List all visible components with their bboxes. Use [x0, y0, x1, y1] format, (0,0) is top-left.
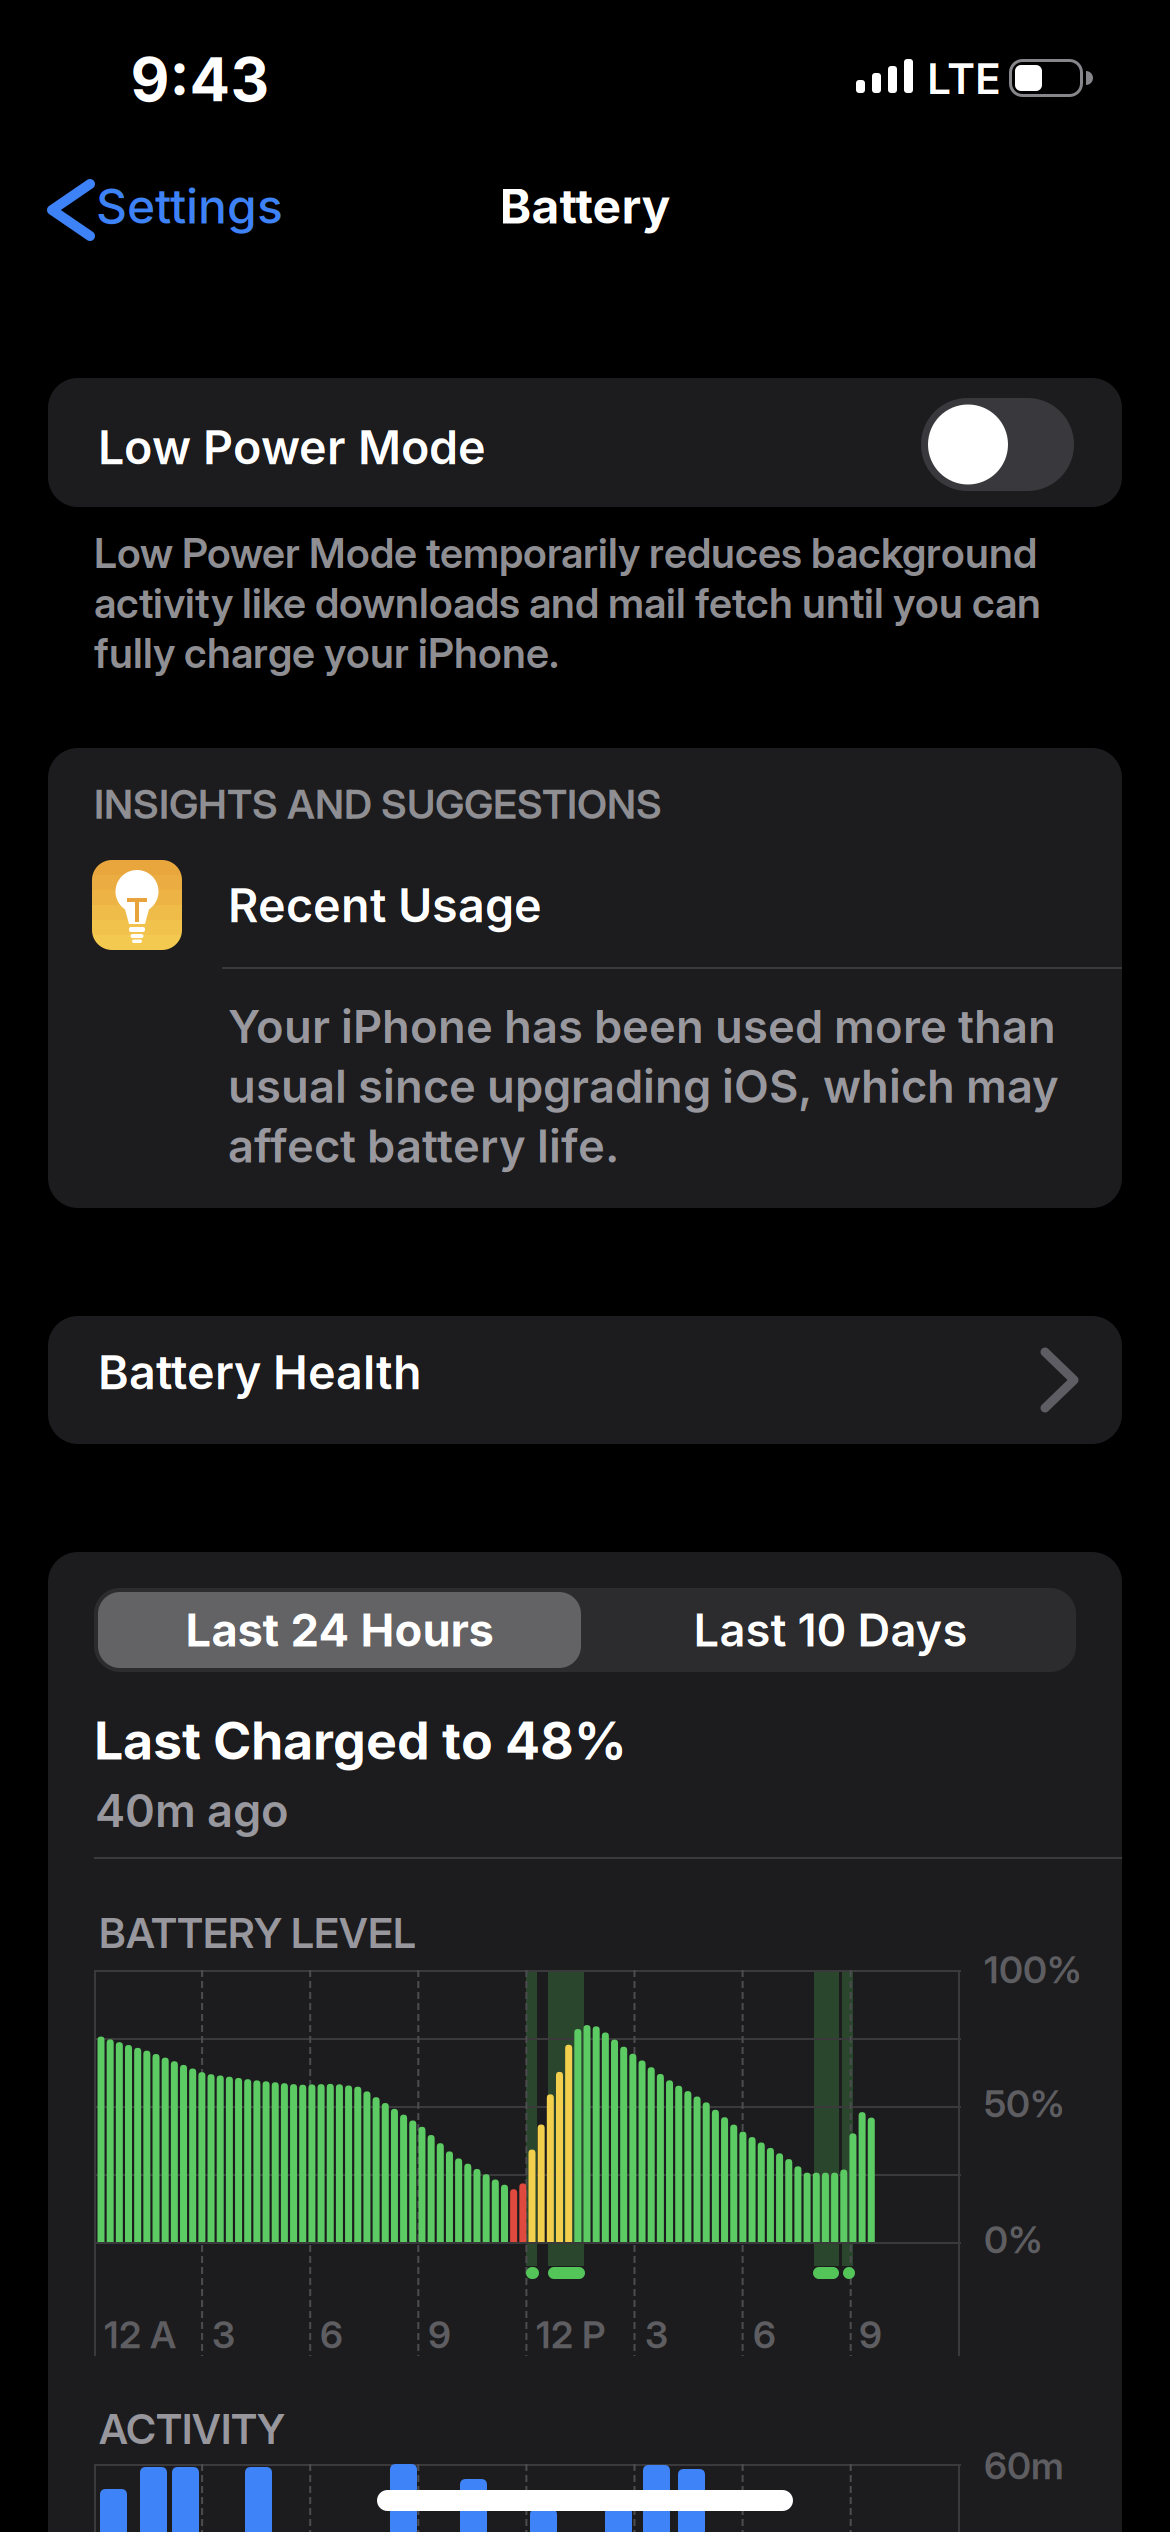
- staticText: Settings: [96, 177, 283, 235]
- staticText: 50%: [984, 2081, 1065, 2126]
- staticText: 9: [428, 2312, 451, 2357]
- staticText: BATTERY LEVEL: [99, 1908, 416, 1958]
- staticText: 100%: [984, 1947, 1082, 1992]
- staticText: INSIGHTS AND SUGGESTIONS: [94, 780, 662, 828]
- staticText: Battery: [499, 177, 670, 235]
- staticText: Recent Usage: [228, 877, 542, 933]
- staticText: 3: [645, 2312, 668, 2357]
- staticText: Low Power Mode temporarily reduces backg…: [94, 528, 1041, 678]
- staticText: 6: [753, 2312, 776, 2357]
- staticText: 3: [212, 2312, 235, 2357]
- button[interactable]: Battery Health: [48, 1316, 1122, 1444]
- staticText: 0%: [984, 2217, 1043, 2262]
- staticText: 9: [859, 2312, 882, 2357]
- staticText: Last 24 Hours: [185, 1603, 493, 1657]
- staticText: 60m: [984, 2443, 1064, 2488]
- staticText: 12 P: [536, 2312, 605, 2357]
- staticText: 12 A: [104, 2312, 176, 2357]
- staticText: LTE: [927, 53, 1001, 105]
- staticText: Low Power Mode: [98, 419, 486, 475]
- staticText: Last Charged to 48%: [94, 1709, 627, 1772]
- button[interactable]: Last 10 Days: [585, 1588, 1076, 1672]
- button[interactable]: Low Power Mode: [921, 398, 1074, 491]
- staticText: Last 10 Days: [693, 1603, 967, 1657]
- staticText: Your iPhone has been used more than usua…: [228, 999, 1059, 1174]
- staticText: ACTIVITY: [99, 2404, 285, 2454]
- button[interactable]: Last 24 Hours: [98, 1592, 581, 1668]
- staticText: Battery Health: [98, 1344, 422, 1400]
- staticText: 40m ago: [95, 1783, 289, 1838]
- staticText: 9:43: [130, 43, 269, 116]
- staticText: 6: [320, 2312, 343, 2357]
- button[interactable]: Back to Settings: [40, 175, 300, 245]
